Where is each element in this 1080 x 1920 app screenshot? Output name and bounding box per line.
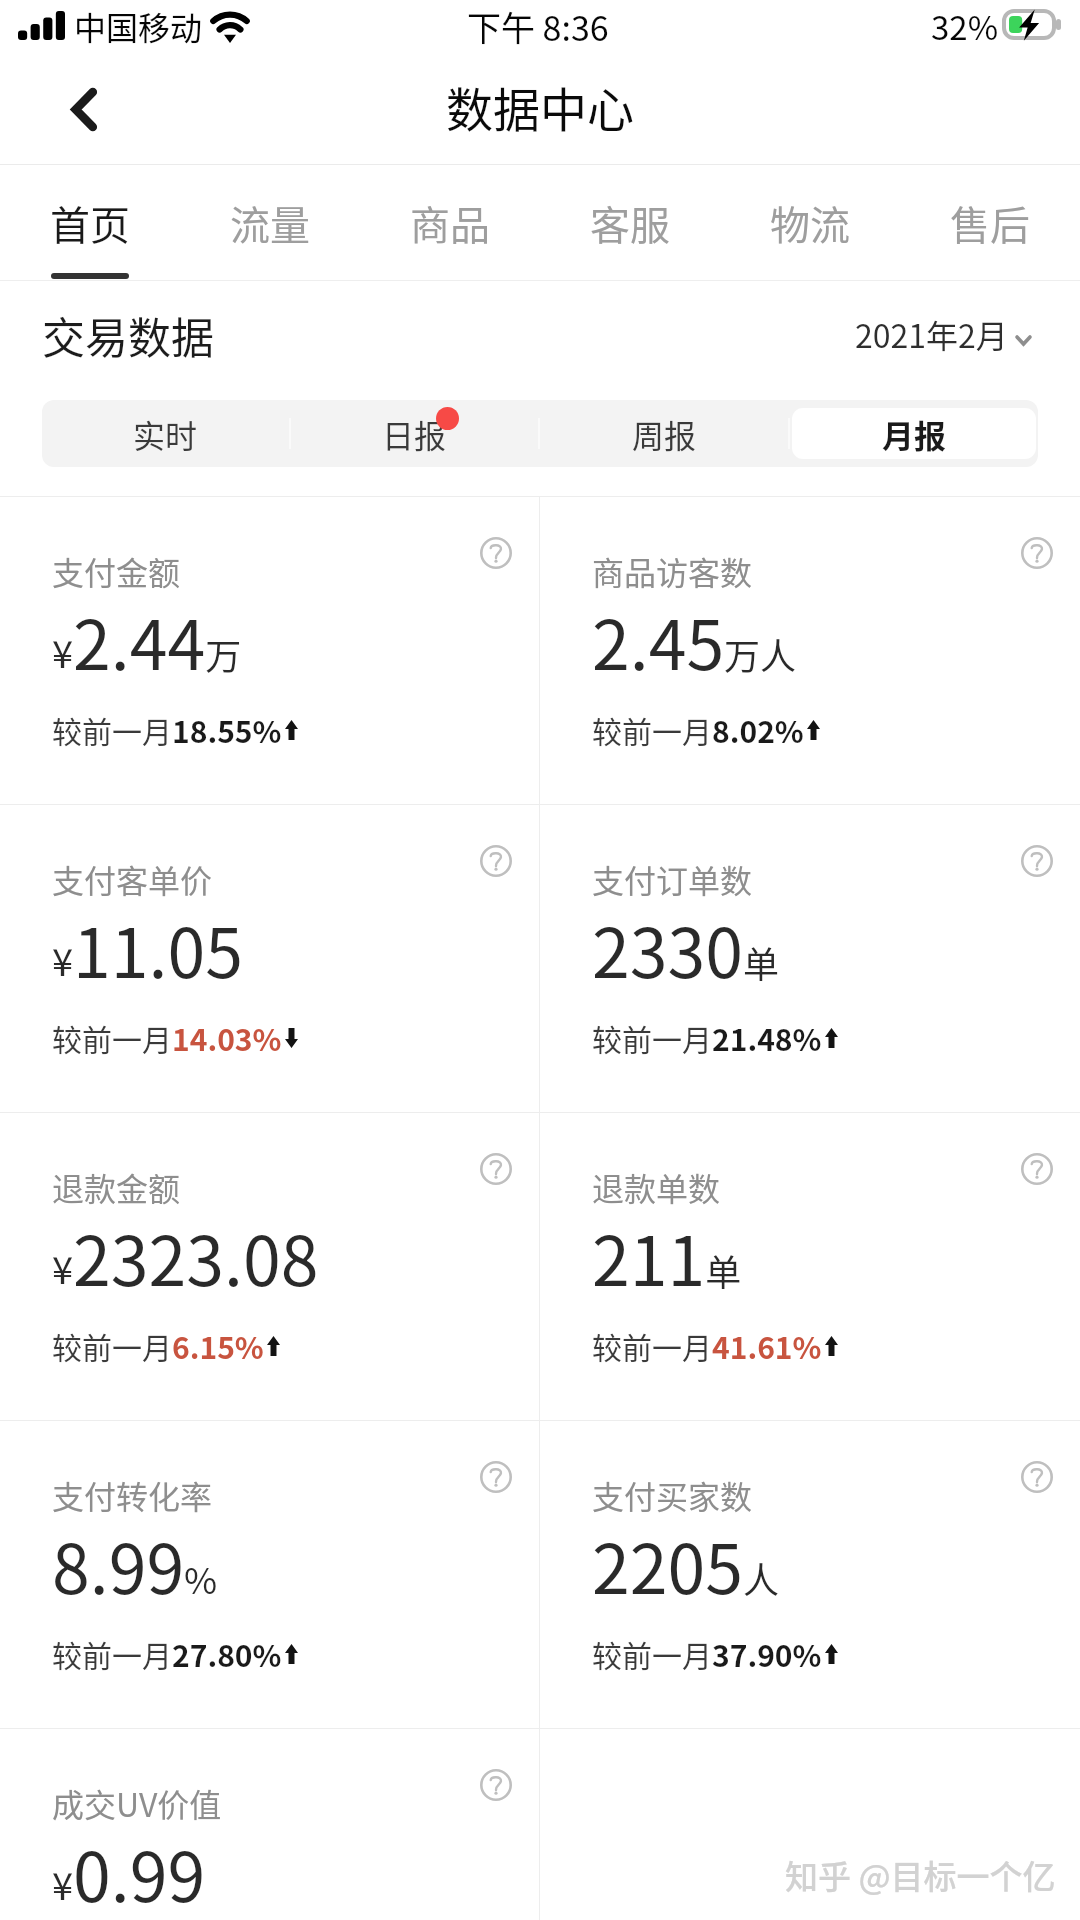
staticText: 2.45万人 [592, 591, 797, 689]
staticText: 2021年2月 [855, 311, 1008, 357]
staticText: 支付订单数 [592, 856, 753, 902]
staticText: 支付买家数 [592, 1472, 753, 1518]
staticText: 211单 [592, 1207, 742, 1305]
staticText: 数据中心 [446, 72, 634, 140]
button[interactable]: Back [38, 66, 128, 156]
staticText: 商品访客数 [592, 548, 753, 594]
staticText: 支付客单价 [52, 856, 213, 902]
staticText: 日报 [382, 411, 447, 457]
button[interactable]: 商品 [360, 165, 540, 280]
button[interactable]: Help [480, 1153, 512, 1185]
button[interactable]: Help [480, 1769, 512, 1801]
staticText: 较前一月18.55% [52, 708, 282, 751]
button[interactable]: 月报 [792, 408, 1036, 459]
staticText: 较前一月8.02% [592, 708, 804, 751]
button[interactable]: 首页 [0, 165, 180, 280]
button[interactable]: 支付订单数 [540, 805, 1080, 1112]
button[interactable]: 流量 [180, 165, 360, 280]
staticText: 2330单 [592, 899, 779, 997]
staticText: 8.99% [52, 1515, 218, 1613]
button[interactable]: 客服 [540, 165, 720, 280]
staticText: 支付转化率 [52, 1472, 213, 1518]
staticText: 售后 [950, 194, 1030, 252]
staticText: 较前一月14.03% [52, 1016, 282, 1059]
staticText: 客服 [590, 194, 670, 252]
staticText: 流量 [230, 194, 310, 252]
staticText: ¥11.05 [52, 899, 243, 997]
button[interactable]: Help [1021, 1461, 1053, 1493]
button[interactable]: 2021年2月 [855, 309, 1032, 355]
button[interactable]: 退款金额 [0, 1113, 539, 1420]
button[interactable]: 支付买家数 [540, 1421, 1080, 1728]
button[interactable]: Help [1021, 537, 1053, 569]
staticText: 较前一月37.90% [592, 1632, 822, 1675]
staticText: ¥2323.08 [52, 1207, 319, 1305]
button[interactable]: 售后 [900, 165, 1080, 280]
staticText: 知乎 @目标一个亿 [785, 1851, 1056, 1899]
button[interactable]: Help [480, 1461, 512, 1493]
button[interactable]: 成交UV价值 [0, 1729, 539, 1920]
staticText: 首页 [50, 194, 130, 252]
staticText: 较前一月21.48% [592, 1016, 822, 1059]
button[interactable]: Help [480, 845, 512, 877]
staticText: 周报 [632, 411, 697, 457]
button[interactable]: Help [1021, 1153, 1053, 1185]
button[interactable]: 日报 [293, 408, 536, 459]
staticText: 中国移动 [74, 3, 203, 49]
button[interactable]: Help [1021, 845, 1053, 877]
button[interactable]: 支付客单价 [0, 805, 539, 1112]
staticText: 退款金额 [52, 1164, 181, 1210]
button[interactable]: 实时 [44, 408, 287, 459]
staticText: 交易数据 [42, 304, 214, 366]
button[interactable]: 支付金额 [0, 497, 539, 804]
button[interactable]: Help [480, 537, 512, 569]
staticText: 较前一月6.15% [52, 1324, 264, 1367]
staticText: 月报 [882, 411, 947, 457]
button[interactable]: 商品访客数 [540, 497, 1080, 804]
staticText: 较前一月41.61% [592, 1324, 822, 1367]
staticText: ¥2.44万 [52, 591, 242, 689]
button[interactable]: 支付转化率 [0, 1421, 539, 1728]
staticText: 商品 [410, 194, 490, 252]
staticText: 较前一月27.80% [52, 1632, 282, 1675]
staticText: 物流 [770, 194, 850, 252]
staticText: 下午 8:36 [467, 2, 609, 51]
button[interactable]: 物流 [720, 165, 900, 280]
staticText: 32% [931, 2, 999, 50]
staticText: 退款单数 [592, 1164, 721, 1210]
staticText: 2205人 [592, 1515, 779, 1613]
button[interactable]: 周报 [542, 408, 786, 459]
staticText: 实时 [133, 411, 198, 457]
button[interactable]: 退款单数 [540, 1113, 1080, 1420]
staticText: ¥0.99 [52, 1823, 206, 1920]
staticText: 成交UV价值 [52, 1780, 222, 1826]
staticText: 支付金额 [52, 548, 181, 594]
